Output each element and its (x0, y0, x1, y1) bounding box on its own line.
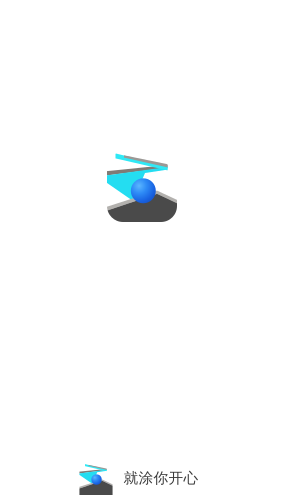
staticText: 就涂你开心 (123, 469, 198, 487)
